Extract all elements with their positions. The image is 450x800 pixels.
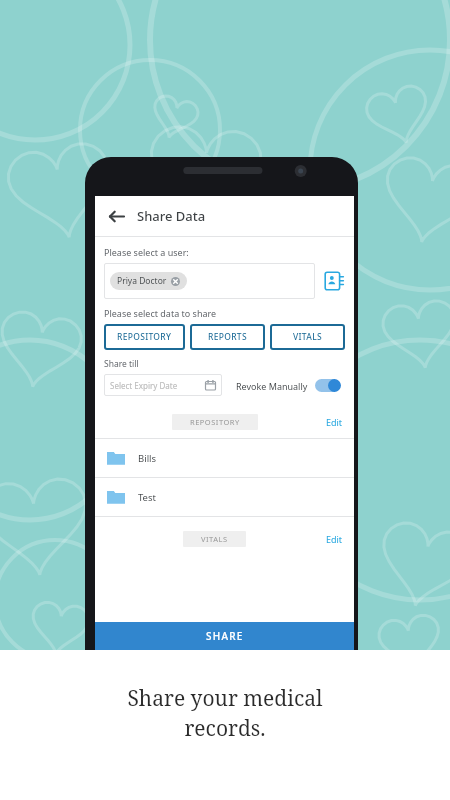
staticText: REPOSITORY — [117, 331, 172, 343]
staticText: VITALS — [293, 331, 323, 343]
button[interactable]: VITALS — [270, 324, 345, 350]
staticText: VITALS — [201, 534, 228, 544]
staticText: REPOSITORY — [190, 417, 240, 427]
button[interactable]: Choose contact — [323, 270, 345, 292]
button[interactable]: Edit — [326, 416, 343, 428]
staticText: Please select a user: — [104, 246, 189, 258]
button[interactable]: Test — [95, 478, 354, 516]
button[interactable]: Edit — [326, 533, 343, 545]
staticText: Edit — [326, 416, 343, 428]
staticText: REPORTS — [208, 331, 247, 343]
staticText: Share your medical records. — [127, 684, 323, 742]
button[interactable]: REPOSITORY — [104, 324, 185, 350]
staticText: SHARE — [206, 629, 244, 643]
button[interactable]: Priya Doctor — [104, 263, 315, 299]
staticText: Priya Doctor — [117, 275, 167, 287]
button[interactable]: REPORTS — [190, 324, 265, 350]
button[interactable]: REPOSITORY — [190, 417, 240, 427]
staticText: Bills — [138, 452, 157, 465]
button[interactable]: Back — [95, 196, 354, 236]
staticText: Select Expiry Date — [110, 380, 178, 391]
button[interactable]: SHARE — [95, 622, 354, 650]
button[interactable]: Back — [103, 203, 129, 229]
staticText: Share till — [104, 358, 139, 370]
button[interactable]: Priya Doctor — [117, 275, 180, 287]
button[interactable]: Bills — [95, 439, 354, 477]
button[interactable]: VITALS — [201, 534, 228, 544]
button[interactable]: Select Expiry Date — [110, 374, 216, 396]
staticText: Share Data — [137, 207, 206, 225]
staticText: Revoke Manually — [236, 380, 308, 392]
staticText: Please select data to share — [104, 307, 217, 319]
button[interactable]: Revoke Manually — [236, 379, 341, 392]
staticText: Test — [138, 491, 156, 504]
staticText: Edit — [326, 533, 343, 545]
